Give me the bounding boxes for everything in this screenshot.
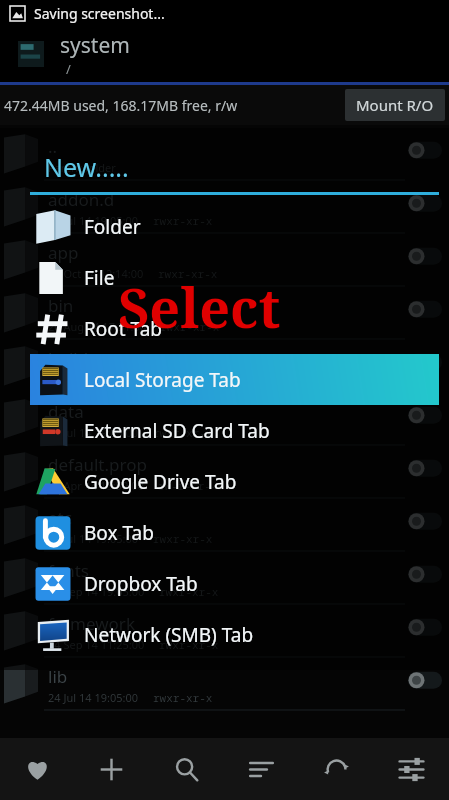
staticText: 472.44MB used, 168.17MB free, r/w [4,96,238,115]
staticText: fonts [48,559,89,582]
staticText: app [48,241,79,264]
button[interactable]: Network (SMB) Tab [30,609,439,660]
button[interactable]: Sort [224,738,299,800]
staticText: 20 Aug 14 17:31:00 [48,319,146,334]
staticText: Network (SMB) Tab [84,622,254,648]
button[interactable]: Favorites [0,738,74,800]
staticText: Saving screenshot... [34,4,165,23]
staticText: etc [48,506,72,529]
staticText: default.prop [48,453,147,476]
staticText: .. [48,135,58,158]
staticText: rwxr-xr-x [153,531,213,546]
staticText: rw-r--r-- [153,372,213,387]
button[interactable]: addon.d [0,181,449,234]
staticText: rwxr-xr-x [159,584,219,599]
staticText: 24 Oct 14 12:14:00 [48,266,144,281]
staticText: 24 Jul 14 19:05:00 [48,690,139,705]
staticText: Dropbox Tab [84,571,198,597]
staticText: External SD Card Tab [84,418,270,444]
staticText: lib [48,665,68,688]
button[interactable]: New [74,738,149,800]
button[interactable]: .. [0,128,449,181]
staticText: rwxr-xr-x [153,425,213,440]
button[interactable]: Mount R/O [345,89,445,121]
staticText: Parent folder [48,160,116,175]
staticText: rwxr-xr-x [159,637,219,652]
staticText: File [84,265,115,291]
staticText: 24 Jul 14 19:05:00 [48,372,139,387]
staticText: 24 Sep 14 19:05:00 [48,584,145,599]
staticText: 24 Jul 14 19:05:00 [48,425,139,440]
button[interactable]: Search [149,738,224,800]
button[interactable]: Local Storage Tab [30,354,439,405]
button[interactable]: Google Drive Tab [30,456,439,507]
staticText: rwxr-xr-x [153,213,213,228]
staticText: Box Tab [84,520,154,546]
staticText: data [48,400,84,423]
button[interactable]: Settings [374,738,449,800]
button[interactable]: Box Tab [30,507,439,558]
staticText: 24 Jul 14 19:05:00 [48,213,139,228]
staticText: system [60,31,130,60]
button[interactable]: framework [0,605,449,658]
button[interactable]: Refresh [299,738,374,800]
button[interactable]: app [0,234,449,287]
staticText: New..... [44,150,129,184]
button[interactable]: data [0,393,449,446]
staticText: bin [48,294,74,317]
staticText: Local Storage Tab [84,367,241,393]
button[interactable]: fonts [0,552,449,605]
button[interactable]: build.prop [0,340,449,393]
button[interactable]: etc [0,499,449,552]
staticText: rwxr-xr-x [160,319,220,334]
staticText: Folder [84,214,141,240]
button[interactable]: bin [0,287,449,340]
staticText: Google Drive Tab [84,469,237,495]
button[interactable]: default.prop [0,446,449,499]
staticText: addon.d [48,188,115,211]
staticText: build.prop [48,347,131,370]
button[interactable]: External SD Card Tab [30,405,439,456]
staticText: Select [118,270,281,344]
button[interactable]: Folder [30,201,439,252]
button[interactable]: lib [0,658,449,711]
staticText: 21 Jul 14 19:05:00 [48,531,139,546]
staticText: rwxr-xr-x [153,690,213,705]
button[interactable]: Dropbox Tab [30,558,439,609]
staticText: Mount R/O [356,95,434,115]
staticText: / [66,60,71,78]
button[interactable]: File [30,252,439,303]
staticText: rwxr-xr-x [158,266,218,281]
staticText: framework [48,612,135,635]
staticText: Root Tab [84,316,162,342]
staticText: rw-r--r-- [158,478,218,493]
button[interactable]: Root Tab [30,303,439,354]
staticText: 01 Apr 14 15:59:00 [48,478,144,493]
staticText: 24 Sep 14 11:25:00 [48,637,145,652]
